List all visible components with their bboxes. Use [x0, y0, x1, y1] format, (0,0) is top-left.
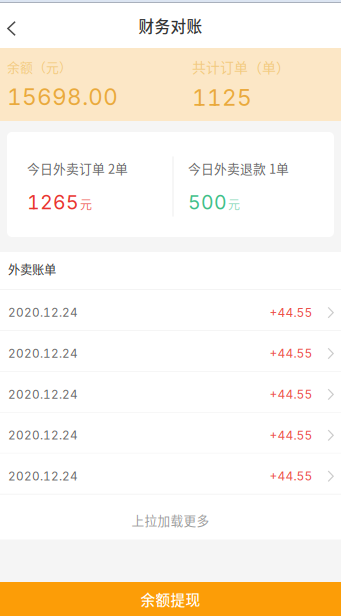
staticText: 共计订单（单） — [192, 57, 290, 77]
staticText: 余额提现 — [140, 588, 200, 610]
button[interactable]: Back — [0, 3, 32, 48]
staticText: 元 — [80, 195, 92, 213]
staticText: +44.55 — [269, 469, 312, 483]
staticText: 财务对账 — [138, 14, 202, 37]
staticText: 外卖账单 — [8, 260, 56, 278]
staticText: 15698.00 — [7, 83, 118, 110]
staticText: 2020.12.24 — [8, 346, 78, 361]
staticText: +44.55 — [269, 428, 312, 442]
staticText: 2020.12.24 — [8, 469, 78, 483]
staticText: 2020.12.24 — [8, 428, 78, 442]
staticText: 2020.12.24 — [8, 305, 78, 320]
button[interactable]: 2020.12.24 — [0, 413, 341, 454]
staticText: +44.55 — [269, 346, 312, 361]
staticText: 元 — [228, 195, 240, 213]
staticText: +44.55 — [269, 305, 312, 320]
button[interactable]: 2020.12.24 — [0, 454, 341, 494]
staticText: 1125 — [192, 84, 252, 111]
staticText: 2020.12.24 — [8, 387, 78, 401]
staticText: 今日外卖退款 1单 — [188, 159, 289, 177]
staticText: 余额（元） — [7, 57, 72, 76]
button[interactable]: 2020.12.24 — [0, 372, 341, 413]
staticText: 500 — [188, 190, 227, 214]
staticText: 1265 — [27, 190, 79, 214]
staticText: 今日外卖订单 2单 — [27, 159, 128, 177]
button[interactable]: 余额提现 — [0, 582, 341, 616]
staticText: +44.55 — [269, 387, 312, 402]
staticText: 上拉加载更多 — [131, 511, 209, 529]
button[interactable]: 2020.12.24 — [0, 331, 341, 372]
button[interactable]: 2020.12.24 — [0, 290, 341, 331]
